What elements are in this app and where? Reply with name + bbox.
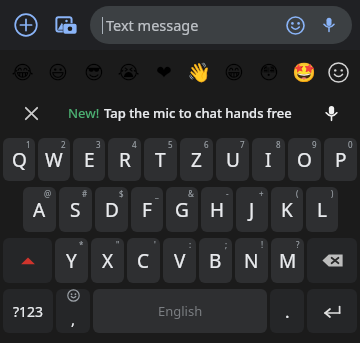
staticText: G <box>175 197 189 223</box>
button[interactable]: Emoji keyboard and comma <box>56 289 90 333</box>
staticText: * <box>79 239 84 250</box>
staticText: L <box>317 197 327 223</box>
staticText: U <box>226 147 240 173</box>
button[interactable]: F <box>131 187 163 232</box>
staticText: 4 <box>132 139 137 150</box>
button[interactable]: J <box>236 187 268 232</box>
staticText: ! <box>261 239 264 250</box>
staticText: Z <box>191 147 202 173</box>
button[interactable]: K <box>271 187 303 232</box>
button[interactable]: L <box>306 187 338 232</box>
staticText: 😃 <box>48 61 68 83</box>
button[interactable]: 😃 <box>40 50 76 94</box>
staticText: ?123 <box>13 302 44 321</box>
button[interactable]: V <box>163 238 196 283</box>
staticText: # <box>82 188 88 199</box>
button[interactable]: 😎 <box>76 50 111 94</box>
staticText: 9 <box>312 139 317 150</box>
button[interactable]: W <box>38 138 70 181</box>
button[interactable]: P <box>324 138 357 181</box>
button[interactable]: N <box>235 238 268 283</box>
button[interactable]: B <box>199 238 232 283</box>
button[interactable]: M <box>271 238 304 283</box>
staticText: , <box>71 309 76 329</box>
staticText: New! <box>68 104 100 122</box>
staticText: V <box>174 248 186 274</box>
button[interactable]: Gallery <box>48 7 84 43</box>
button[interactable]: Q <box>3 138 35 181</box>
button[interactable]: 😁 <box>216 50 251 94</box>
button[interactable]: D <box>95 187 128 232</box>
staticText: 3 <box>96 139 101 150</box>
staticText: E <box>84 147 95 173</box>
staticText: 0 <box>348 139 353 150</box>
button[interactable]: Enter <box>307 289 357 333</box>
staticText: I <box>265 147 272 173</box>
staticText: C <box>137 248 150 274</box>
staticText: . <box>285 300 290 323</box>
button[interactable]: ❤️ <box>146 50 181 94</box>
staticText: J <box>249 197 255 223</box>
button[interactable]: Text message <box>90 6 352 44</box>
staticText: 8 <box>276 139 281 150</box>
button[interactable]: A <box>23 187 56 232</box>
staticText: Tap the mic to chat hands free <box>104 104 292 122</box>
button[interactable]: ?123 <box>3 289 53 333</box>
staticText: _ <box>155 188 159 199</box>
button[interactable]: 😂 <box>4 50 40 94</box>
button[interactable]: I <box>252 138 285 181</box>
button[interactable]: Voice input <box>316 12 342 38</box>
staticText: B <box>209 248 222 274</box>
staticText: A <box>33 197 46 223</box>
staticText: Q <box>12 147 27 173</box>
staticText: @ <box>44 188 52 199</box>
staticText: " <box>116 239 120 250</box>
staticText: 😳 <box>259 61 279 83</box>
button[interactable]: O <box>288 138 321 181</box>
button[interactable]: 😭 <box>111 50 146 94</box>
staticText: ? <box>296 239 300 250</box>
button[interactable]: Dismiss <box>16 98 46 128</box>
button[interactable]: Y <box>55 238 88 283</box>
button[interactable]: Shift caps lock <box>3 238 52 283</box>
staticText: P <box>335 147 347 173</box>
staticText: O <box>297 147 312 173</box>
button[interactable]: 😳 <box>251 50 286 94</box>
button[interactable]: U <box>216 138 249 181</box>
staticText: F <box>142 197 152 223</box>
button[interactable]: 👋 <box>181 50 216 94</box>
staticText: & <box>188 188 194 199</box>
button[interactable]: Backspace <box>307 238 357 283</box>
button[interactable]: More emoji <box>321 50 356 94</box>
staticText: 7 <box>240 139 245 150</box>
staticText: D <box>105 197 119 223</box>
button[interactable]: R <box>108 138 141 181</box>
button[interactable]: Z <box>180 138 213 181</box>
staticText: 😂 <box>11 61 34 83</box>
button[interactable]: G <box>166 187 198 232</box>
button[interactable]: Emoji <box>282 12 308 38</box>
staticText: N <box>244 248 259 274</box>
staticText: 2 <box>61 139 66 150</box>
button[interactable]: S <box>59 187 92 232</box>
staticText: : <box>189 239 192 250</box>
staticText: X <box>102 248 114 274</box>
button[interactable]: T <box>144 138 177 181</box>
staticText: W <box>45 147 63 173</box>
staticText: T <box>155 147 166 173</box>
button[interactable]: Add attachment <box>8 7 44 43</box>
staticText: 🤩 <box>292 61 316 83</box>
button[interactable]: X <box>91 238 124 283</box>
staticText: H <box>210 197 225 223</box>
staticText: ❤️ <box>156 61 172 83</box>
button[interactable]: C <box>127 238 160 283</box>
button[interactable]: 🤩 <box>286 50 321 94</box>
button[interactable]: . <box>270 289 304 333</box>
staticText: 😎 <box>84 61 104 83</box>
staticText: S <box>70 197 81 223</box>
button[interactable]: H <box>201 187 233 232</box>
button[interactable]: Voice typing <box>316 98 346 128</box>
button[interactable]: English <box>93 289 267 333</box>
button[interactable]: E <box>73 138 105 181</box>
staticText: 👋 <box>187 61 211 83</box>
